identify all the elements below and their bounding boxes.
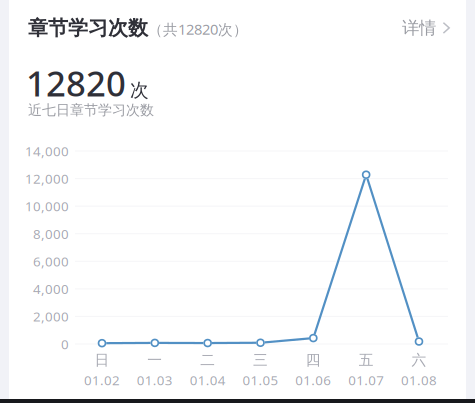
staticText: 二	[200, 351, 215, 369]
staticText: 14,000	[25, 142, 69, 160]
staticText: 日	[94, 351, 109, 369]
staticText: 六	[411, 351, 426, 369]
staticText: 章节学习次数	[28, 16, 148, 40]
staticText: 01.08	[401, 371, 437, 389]
staticText: 10,000	[25, 197, 69, 215]
staticText: 五	[359, 351, 374, 369]
staticText: 4,000	[33, 280, 69, 298]
staticText: 6,000	[33, 252, 69, 270]
button[interactable]: 详情	[398, 10, 455, 46]
staticText: 01.02	[84, 371, 120, 389]
staticText: 01.06	[295, 371, 331, 389]
staticText: 详情	[402, 17, 436, 39]
staticText: （共12820次）	[148, 19, 248, 39]
staticText: 三	[253, 351, 268, 369]
staticText: 近七日章节学习次数	[28, 101, 154, 119]
staticText: 2,000	[33, 308, 69, 325]
staticText: 0	[61, 335, 69, 353]
staticText: 12,000	[25, 170, 69, 187]
staticText: 一	[147, 351, 162, 369]
staticText: 01.07	[348, 371, 384, 389]
staticText: 四	[306, 351, 321, 369]
staticText: 12820	[26, 60, 126, 106]
staticText: 次	[130, 79, 149, 102]
staticText: 01.05	[242, 371, 278, 389]
staticText: 01.03	[137, 371, 173, 389]
staticText: 01.04	[190, 371, 226, 389]
staticText: 8,000	[33, 225, 69, 243]
